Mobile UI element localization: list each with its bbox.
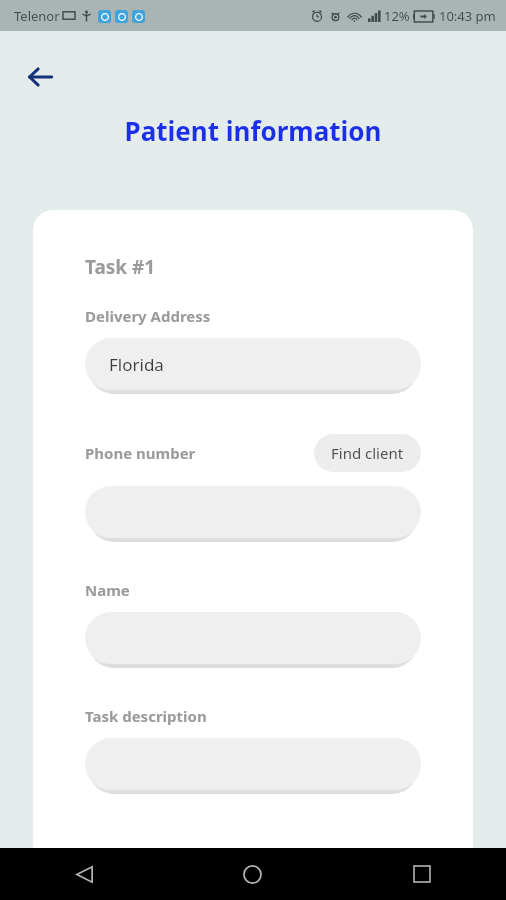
staticText: Phone number xyxy=(85,443,196,463)
staticText: Telenor xyxy=(14,7,60,25)
button[interactable]: Find client xyxy=(314,434,421,472)
staticText: Florida xyxy=(109,353,164,376)
staticText: Patient information xyxy=(0,113,506,148)
staticText: Task description xyxy=(85,706,207,726)
button[interactable]: Florida xyxy=(85,338,421,390)
staticText: 12% xyxy=(384,7,410,25)
button[interactable]: Back xyxy=(16,53,64,101)
staticText: Task #1 xyxy=(85,254,156,280)
staticText: Delivery Address xyxy=(85,306,211,326)
button[interactable]: Recent apps xyxy=(337,848,506,900)
staticText: Find client xyxy=(331,443,404,463)
button[interactable]: Home xyxy=(168,848,337,900)
staticText: Name xyxy=(85,580,130,600)
staticText: 10:43 pm xyxy=(439,7,496,25)
button[interactable]: Back xyxy=(0,848,168,900)
